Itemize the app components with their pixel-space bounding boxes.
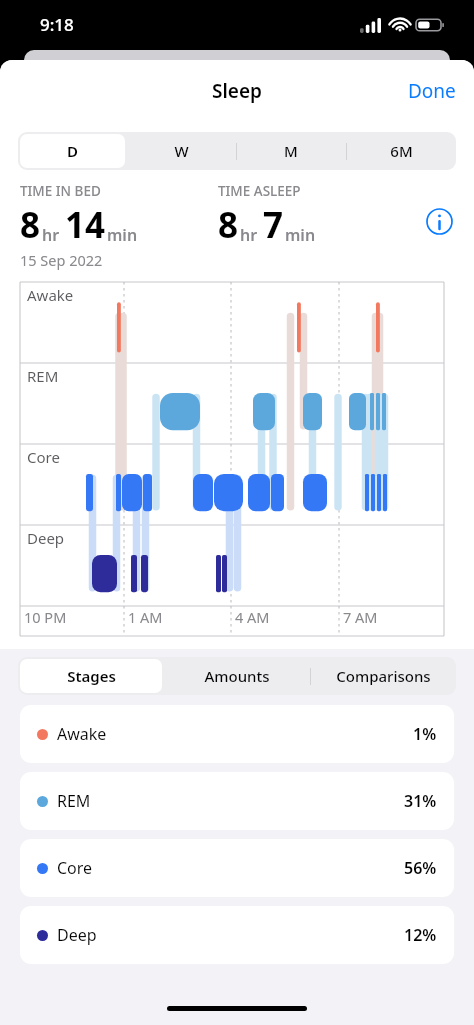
staticText: Core [27, 447, 60, 467]
button[interactable]: Core [20, 839, 454, 897]
staticText: Comparisons [336, 666, 431, 686]
staticText: 8 [218, 201, 239, 249]
staticText: min [107, 224, 138, 246]
button[interactable]: REM [20, 772, 454, 830]
staticText: W [174, 141, 189, 161]
button[interactable]: About sleep stages [422, 204, 456, 238]
button[interactable]: Deep [20, 906, 454, 964]
staticText: Done [408, 78, 456, 104]
staticText: Deep [27, 528, 65, 548]
staticText: 12% [404, 924, 437, 946]
staticText: Core [57, 857, 93, 879]
staticText: M [284, 141, 298, 161]
staticText: 9:18 [40, 13, 74, 36]
staticText: Awake [27, 285, 74, 305]
staticText: Stages [67, 666, 116, 686]
staticText: Awake [57, 723, 107, 745]
button[interactable]: 6M [346, 132, 456, 170]
button[interactable]: Done [390, 70, 474, 112]
staticText: Deep [57, 924, 97, 946]
staticText: TIME ASLEEP [218, 182, 301, 200]
staticText: 7 AM [343, 607, 378, 627]
staticText: 4 AM [235, 607, 270, 627]
staticText: 6M [390, 141, 413, 161]
button[interactable]: M [236, 132, 346, 170]
staticText: hr [240, 224, 258, 246]
staticText: D [67, 141, 78, 161]
staticText: 1% [413, 723, 437, 745]
staticText: 15 Sep 2022 [20, 250, 103, 270]
button[interactable]: D [18, 132, 127, 170]
staticText: 10 PM [24, 607, 67, 627]
button[interactable]: Stages [18, 657, 164, 695]
staticText: hr [42, 224, 60, 246]
button[interactable]: W [127, 132, 236, 170]
staticText: REM [57, 790, 91, 812]
staticText: REM [27, 366, 59, 386]
button[interactable]: Comparisons [310, 657, 456, 695]
button[interactable]: Awake [20, 705, 454, 763]
staticText: min [285, 224, 316, 246]
staticText: Sleep [212, 78, 262, 104]
staticText: 14 [65, 201, 106, 249]
button[interactable]: Amounts [164, 657, 310, 695]
staticText: 31% [404, 790, 437, 812]
staticText: Amounts [204, 666, 270, 686]
staticText: 56% [404, 857, 437, 879]
staticText: 8 [20, 201, 41, 249]
staticText: TIME IN BED [20, 182, 101, 200]
staticText: 1 AM [128, 607, 163, 627]
staticText: 7 [263, 201, 284, 249]
